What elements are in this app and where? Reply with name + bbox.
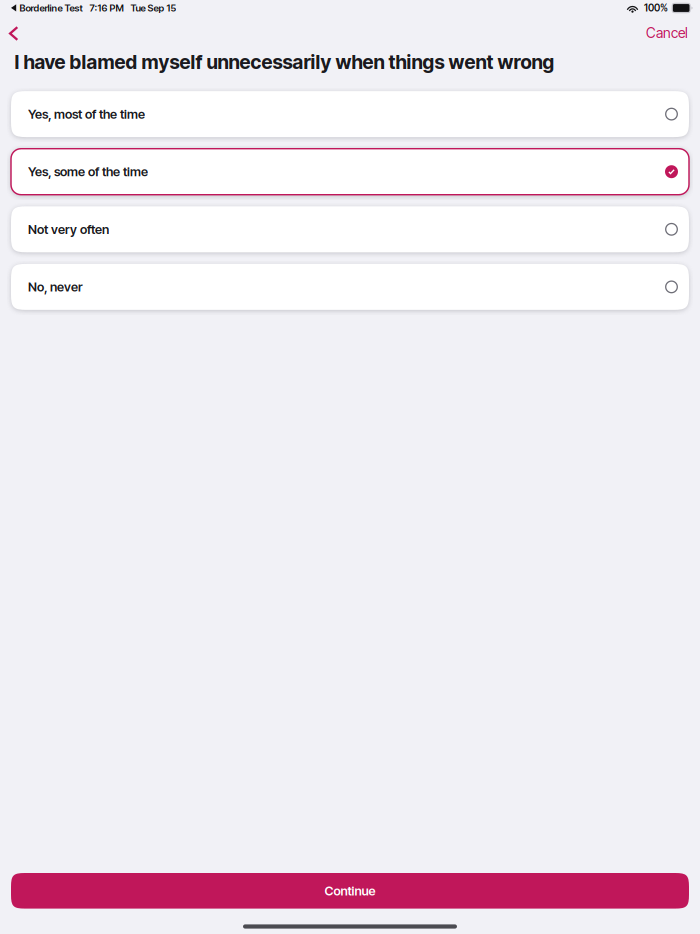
staticText: Cancel bbox=[646, 24, 688, 41]
staticText: No, never bbox=[28, 279, 83, 294]
button[interactable]: Cancel bbox=[640, 20, 694, 46]
button[interactable]: No, never bbox=[11, 264, 689, 310]
staticText: 100% bbox=[644, 2, 668, 14]
staticText: Continue bbox=[324, 883, 375, 898]
staticText: Yes, some of the time bbox=[28, 164, 148, 179]
button[interactable]: Back bbox=[0, 20, 29, 46]
button[interactable]: Yes, some of the time bbox=[11, 149, 689, 195]
button[interactable]: Yes, most of the time bbox=[11, 91, 689, 137]
staticText: Tue Sep 15 bbox=[130, 2, 176, 14]
staticText: Yes, most of the time bbox=[28, 106, 145, 122]
staticText: Borderline Test bbox=[19, 2, 82, 14]
staticText: Not very often bbox=[28, 222, 109, 237]
button[interactable]: Not very often bbox=[11, 206, 689, 252]
staticText: I have blamed myself unnecessarily when … bbox=[14, 50, 554, 74]
staticText: 7:16 PM bbox=[89, 2, 123, 14]
button[interactable]: Continue bbox=[11, 873, 689, 909]
